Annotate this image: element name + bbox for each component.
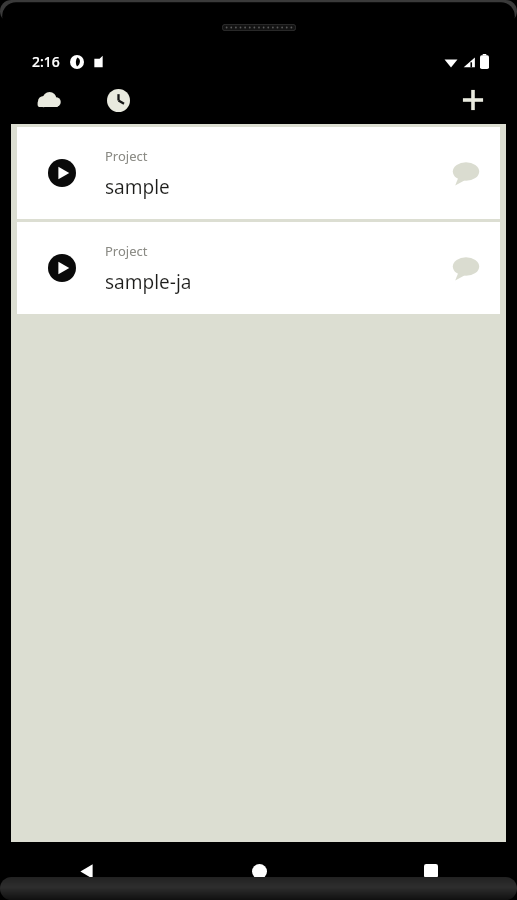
staticText: 2:16 xyxy=(32,52,60,71)
button[interactable]: Cloud sync xyxy=(26,78,70,122)
staticText: Project xyxy=(105,242,148,260)
button[interactable]: Comments xyxy=(442,244,490,292)
button[interactable]: Play xyxy=(41,247,83,289)
button[interactable]: Play xyxy=(41,152,83,194)
staticText: Project xyxy=(105,147,148,165)
button[interactable]: Comments xyxy=(442,149,490,197)
button[interactable]: Play xyxy=(17,127,500,219)
staticText: sample-ja xyxy=(105,269,192,295)
button[interactable]: Add xyxy=(451,78,495,122)
button[interactable]: Recents xyxy=(345,842,517,900)
button[interactable]: History xyxy=(96,78,140,122)
button[interactable]: Back xyxy=(0,842,173,900)
staticText: sample xyxy=(105,174,170,200)
button[interactable]: Play xyxy=(17,222,500,314)
button[interactable]: Home xyxy=(173,842,345,900)
